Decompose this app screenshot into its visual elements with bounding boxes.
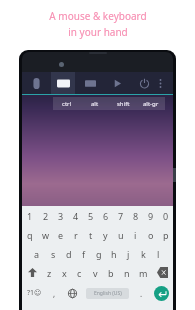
button[interactable]: Shift [22,263,42,282]
button[interactable]: k [136,244,151,263]
button[interactable]: 3 [53,206,68,225]
staticText: shift [117,100,130,108]
staticText: z [47,267,52,279]
staticText: b [108,267,114,279]
staticText: s [51,248,56,260]
staticText: ctrl [62,100,72,108]
button[interactable]: Play [108,72,126,94]
staticText: v [93,267,98,279]
staticText: in your hand [68,25,128,39]
button[interactable]: alt [81,97,109,110]
button[interactable]: Keyboard [51,72,75,94]
button[interactable]: 1 [22,206,38,225]
staticText: i [134,229,137,241]
staticText: w [42,229,50,241]
button[interactable]: 7 [113,206,128,225]
button[interactable]: h [106,244,121,263]
button[interactable]: Macro keyboard [81,72,99,94]
button[interactable]: b [103,263,119,282]
staticText: q [27,229,33,241]
staticText: t [89,229,93,241]
button[interactable]: d [61,244,76,263]
staticText: m [139,267,148,279]
button[interactable]: More options [153,72,168,94]
staticText: k [141,248,146,260]
button[interactable]: Enter [149,282,173,304]
staticText: g [96,248,102,260]
button[interactable]: z [42,263,57,282]
button[interactable]: p [158,225,173,244]
staticText: 6 [103,210,109,222]
button[interactable]: n [119,263,135,282]
staticText: 2 [43,210,49,222]
button[interactable]: y [98,225,113,244]
button[interactable]: w [38,225,53,244]
button[interactable]: alt-gr [137,97,165,110]
button[interactable]: 0 [158,206,173,225]
button[interactable]: r [68,225,83,244]
staticText: e [58,229,64,241]
staticText: English (US) [94,290,122,297]
button[interactable]: 8 [128,206,143,225]
button[interactable]: v [87,263,103,282]
button[interactable]: 6 [98,206,113,225]
staticText: 0 [163,210,169,222]
staticText: 5 [88,210,94,222]
staticText: j [127,248,130,260]
button[interactable]: x [57,263,72,282]
button[interactable]: Mouse [27,72,45,94]
button[interactable]: f [76,244,91,263]
staticText: x [62,267,67,279]
staticText: l [157,248,160,260]
staticText: h [111,248,117,260]
staticText: a [34,248,40,260]
button[interactable]: t [83,225,98,244]
button[interactable]: m [135,263,151,282]
button[interactable]: o [143,225,158,244]
staticText: 4 [73,210,79,222]
button[interactable]: i [128,225,143,244]
staticText: f [82,248,86,260]
button[interactable]: e [53,225,68,244]
staticText: . [140,288,143,299]
staticText: r [74,229,78,241]
staticText: alt [91,100,99,108]
button[interactable]: shift [109,97,137,110]
button[interactable]: ?1☺ [22,282,46,304]
button[interactable]: 4 [68,206,83,225]
button[interactable]: q [22,225,38,244]
staticText: 3 [58,210,64,222]
staticText: 7 [118,210,124,222]
button[interactable]: Change language [62,282,82,304]
staticText: d [66,248,72,260]
button[interactable]: , [46,282,62,304]
button[interactable]: 9 [143,206,158,225]
button[interactable]: . [133,282,149,304]
button[interactable]: c [72,263,87,282]
staticText: 9 [148,210,154,222]
staticText: 8 [133,210,139,222]
staticText: A mouse & keyboard [49,9,147,23]
staticText: ?1☺ [27,288,42,298]
staticText: y [103,229,108,241]
button[interactable]: Power [135,72,153,94]
button[interactable]: a [29,244,45,263]
staticText: p [163,229,169,241]
button[interactable]: 2 [38,206,53,225]
staticText: o [148,229,154,241]
button[interactable]: j [121,244,136,263]
button[interactable]: 5 [83,206,98,225]
button[interactable]: l [151,244,166,263]
button[interactable]: s [45,244,61,263]
staticText: , [53,288,56,299]
staticText: c [77,267,82,279]
button[interactable]: u [113,225,128,244]
button[interactable]: English (US) [86,288,129,299]
staticText: u [118,229,124,241]
staticText: n [124,267,130,279]
button[interactable]: ctrl [53,97,81,110]
staticText: 1 [27,210,33,222]
staticText: alt-gr [143,100,159,108]
button[interactable]: g [91,244,106,263]
button[interactable]: Backspace [151,263,173,282]
